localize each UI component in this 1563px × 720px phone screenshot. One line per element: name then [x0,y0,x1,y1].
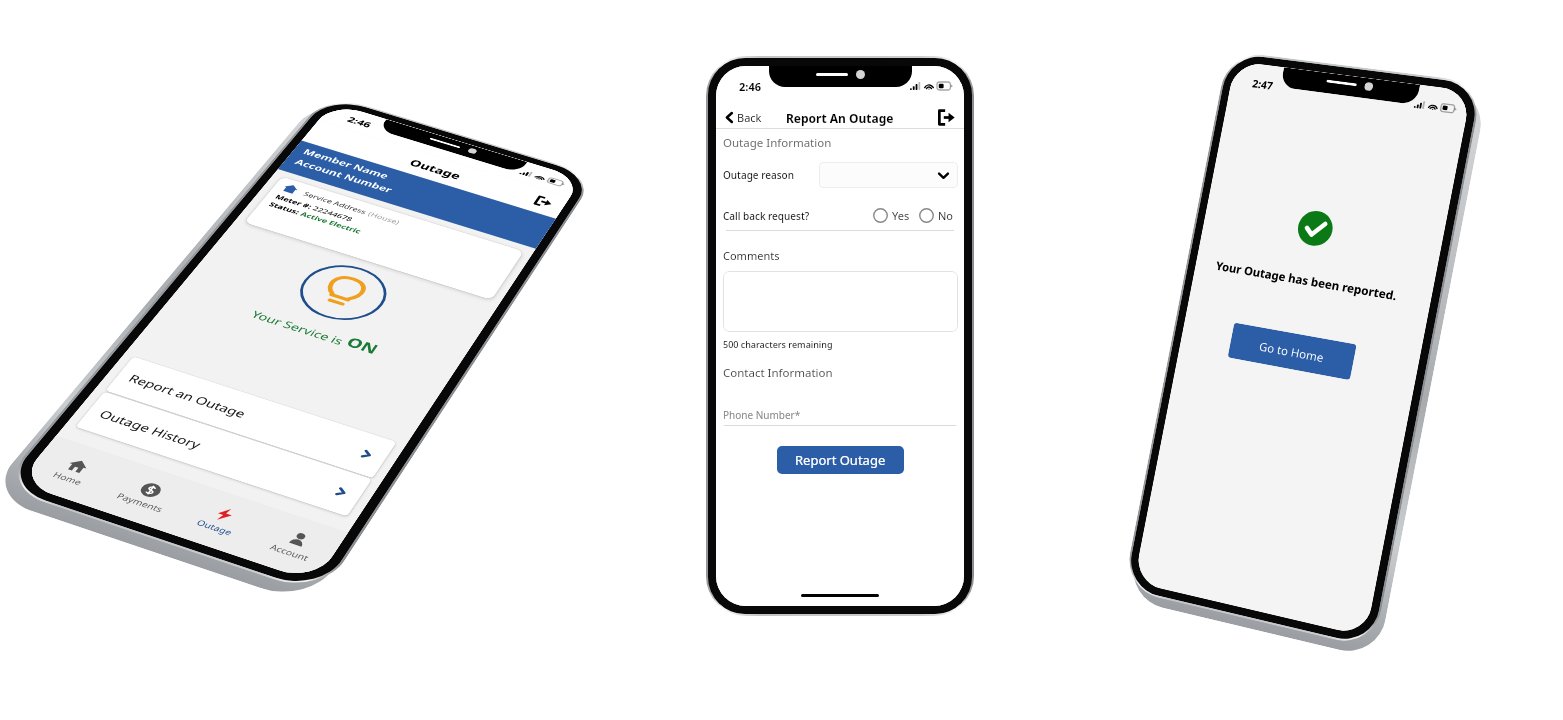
button[interactable]: Go to Home [1227,322,1357,380]
staticText: Outage History [96,407,205,452]
button[interactable]: Outage History [75,391,372,517]
button[interactable]: Service Address [244,176,524,300]
button[interactable]: Log out [938,109,964,126]
staticText: Meter #: [274,192,317,211]
staticText: Go to Home [1258,338,1325,365]
button[interactable]: Account [240,508,348,582]
staticText: Outage [194,517,235,537]
staticText: Back [737,110,762,125]
staticText: Comments [723,248,780,263]
staticText: 22244678 [311,204,355,223]
staticText: Outage Information [723,135,832,151]
staticText: 2:46 [739,79,761,94]
staticText: Payments [115,490,167,514]
button[interactable]: Payments [90,459,201,532]
button[interactable]: Outage reason [819,162,958,188]
staticText: Active Electric [299,210,364,235]
button[interactable]: Report an Outage [105,356,397,478]
staticText: Contact Information [723,365,833,381]
button[interactable]: Report Outage [777,446,904,474]
button[interactable]: Outage [165,483,274,557]
staticText: Report An Outage [786,110,894,126]
button[interactable]: Home [17,436,128,507]
button[interactable]: Outage [301,120,570,219]
staticText: Account Number [292,156,396,195]
staticText: Yes [892,208,910,223]
staticText: Outage [407,156,465,182]
staticText: Your Outage has been reported. [1215,257,1399,303]
staticText: Phone Number* [723,408,801,422]
staticText: (House) [366,210,402,226]
staticText: Account [268,541,312,563]
staticText: 2:46 [345,114,374,129]
staticText: Report an Outage [126,371,250,421]
staticText: ON [342,333,383,358]
button[interactable]: No [917,206,956,225]
staticText: Service Address [302,190,372,216]
button[interactable]: Log out [533,195,555,209]
staticText: 2:47 [1251,76,1274,93]
staticText: Call back request? [723,209,810,223]
button[interactable]: Back [716,105,770,130]
staticText: Member Name [301,146,392,181]
staticText: 500 characters remaining [723,338,833,350]
button[interactable]: Yes [871,206,912,225]
staticText: Home [51,469,85,487]
button[interactable]: Comments [723,271,958,332]
staticText: Outage reason [723,168,794,182]
staticText: No [938,208,954,223]
staticText: Status: [267,200,304,216]
staticText: Your Service is [249,308,351,349]
staticText: Report Outage [795,451,886,469]
